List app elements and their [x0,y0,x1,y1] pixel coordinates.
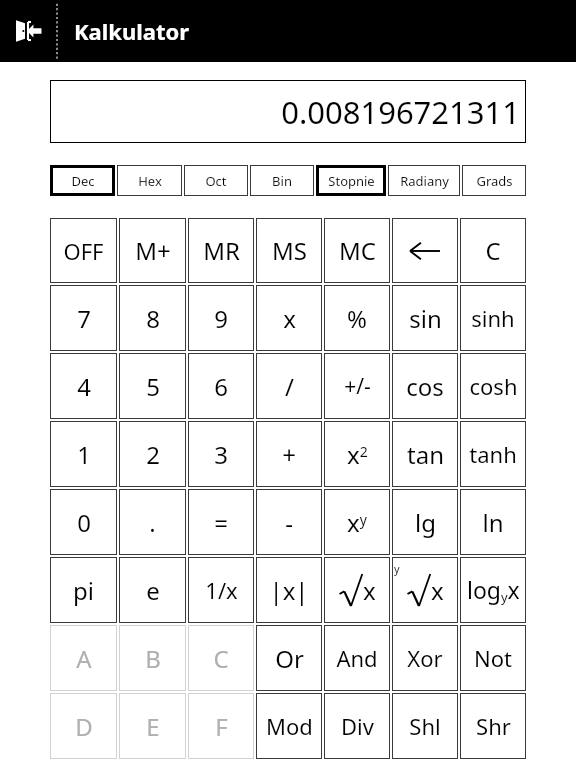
button[interactable]: 5 [119,353,186,419]
button[interactable]: 8 [119,285,186,351]
button[interactable]: |x| [256,557,322,623]
staticText: sin [409,302,442,335]
staticText: x [363,574,376,607]
button[interactable]: Exit [0,0,56,62]
button[interactable]: tan [392,421,458,487]
button[interactable]: 9 [188,285,254,351]
staticText: 7 [77,302,91,335]
staticText: +/- [344,372,371,401]
staticText: And [336,643,378,673]
button[interactable]: Or [256,625,322,691]
staticText: x [431,574,444,607]
other: Nth root [392,557,458,623]
button[interactable]: Nth root [392,557,458,623]
staticText: e [146,574,160,607]
button[interactable]: xy [324,489,390,555]
staticText: Div [341,711,374,741]
button[interactable]: E [119,693,186,759]
other: Backspace [408,239,442,263]
button[interactable]: Oct [184,165,248,196]
button[interactable]: D [50,693,117,759]
button[interactable]: Grads [462,165,526,196]
staticText: M+ [135,234,171,267]
button[interactable]: Stopnie [316,165,386,196]
staticText: B [145,642,161,675]
staticText: tanh [469,439,517,469]
staticText: - [285,506,293,539]
staticText: Xor [407,643,443,673]
button[interactable]: Dec [50,165,115,196]
button[interactable]: logyx [460,557,526,623]
button[interactable]: OFF [50,218,117,283]
button[interactable]: +/- [324,353,390,419]
button[interactable]: Shl [392,693,458,759]
button[interactable]: x [256,285,322,351]
staticText: 4 [77,370,91,403]
button[interactable]: B [119,625,186,691]
staticText: 9 [214,302,228,335]
staticText: = [214,506,228,539]
button[interactable]: + [256,421,322,487]
button[interactable]: 2 [119,421,186,487]
button[interactable]: cosh [460,353,526,419]
button[interactable]: e [119,557,186,623]
button[interactable]: 1 [50,421,117,487]
staticText: y [394,561,400,576]
staticText: F [215,710,228,743]
button[interactable]: Div [324,693,390,759]
button[interactable]: Xor [392,625,458,691]
button[interactable]: Mod [256,693,322,759]
button[interactable]: sin [392,285,458,351]
button[interactable]: tanh [460,421,526,487]
button[interactable]: C [460,218,526,283]
button[interactable]: % [324,285,390,351]
button[interactable]: x2 [324,421,390,487]
button[interactable]: / [256,353,322,419]
staticText: 8 [146,302,160,335]
button[interactable]: cos [392,353,458,419]
button[interactable]: 7 [50,285,117,351]
button[interactable]: Not [460,625,526,691]
button[interactable]: F [188,693,254,759]
button[interactable]: Shr [460,693,526,759]
staticText: |x| [269,574,309,607]
staticText: Oct [205,172,227,190]
staticText: Grads [476,172,513,190]
staticText: OFF [63,236,104,266]
button[interactable]: = [188,489,254,555]
button[interactable]: Hex [117,165,182,196]
button[interactable]: M+ [119,218,186,283]
staticText: cosh [469,371,518,401]
button[interactable]: ln [460,489,526,555]
button[interactable]: 4 [50,353,117,419]
button[interactable]: And [324,625,390,691]
button[interactable]: Radiany [388,165,460,196]
staticText: tan [407,438,444,471]
button[interactable]: C [188,625,254,691]
staticText: 2 [146,438,160,471]
button[interactable]: Backspace [392,218,458,283]
staticText: MR [203,234,240,267]
button[interactable]: - [256,489,322,555]
button[interactable]: 3 [188,421,254,487]
button[interactable]: 0 [50,489,117,555]
button[interactable]: . [119,489,186,555]
button[interactable]: Bin [250,165,314,196]
button[interactable]: pi [50,557,117,623]
button[interactable]: A [50,625,117,691]
button[interactable]: MR [188,218,254,283]
button[interactable]: Square root [324,557,390,623]
button[interactable]: MS [256,218,322,283]
staticText: xy [347,506,367,539]
staticText: % [347,302,367,335]
button[interactable]: MC [324,218,390,283]
staticText: sinh [471,303,515,333]
button[interactable]: 1/x [188,557,254,623]
staticText: 3 [214,438,228,471]
staticText: E [146,710,160,743]
staticText: cos [406,370,444,403]
button[interactable]: sinh [460,285,526,351]
button[interactable]: lg [392,489,458,555]
staticText: Or [275,642,304,675]
button[interactable]: 6 [188,353,254,419]
